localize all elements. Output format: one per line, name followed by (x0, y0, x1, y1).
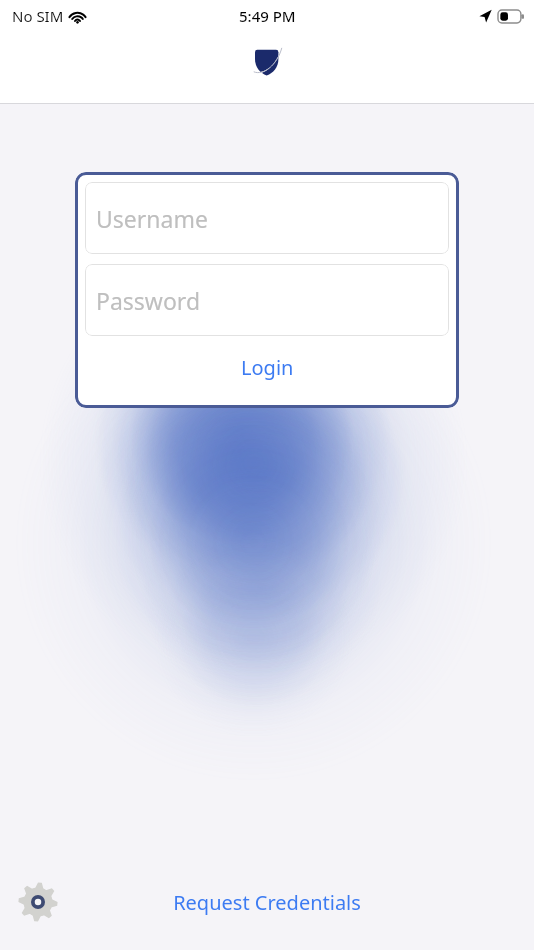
button[interactable]: Username (85, 182, 449, 254)
button[interactable]: Login (85, 336, 449, 398)
button[interactable]: Password (85, 264, 449, 336)
staticText: Request Credentials (173, 889, 361, 916)
staticText: Password (96, 285, 201, 316)
staticText: 5:49 PM (239, 6, 296, 26)
staticText: Username (96, 203, 208, 234)
staticText: No SIM (12, 6, 64, 26)
button[interactable]: Settings (12, 876, 64, 928)
button[interactable]: Request Credentials (155, 881, 379, 924)
staticText: Login (241, 354, 294, 381)
